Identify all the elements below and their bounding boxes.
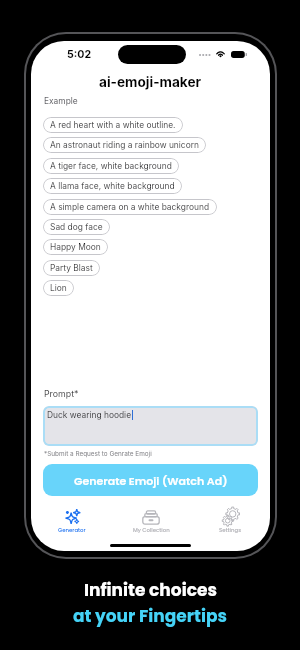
staticText: Sad dog face (50, 222, 103, 232)
staticText: Duck wearing hoodie (47, 410, 132, 420)
button[interactable]: My Collection (115, 505, 187, 532)
staticText: 5:02 (67, 48, 92, 61)
staticText: Settings (219, 526, 242, 534)
button[interactable]: Sad dog face (43, 219, 110, 235)
staticText: A llama face, white background (50, 181, 175, 191)
staticText: Infinite choices (84, 578, 217, 602)
button[interactable]: Generate Emoji (Watch Ad) (43, 464, 258, 496)
staticText: Prompt* (44, 388, 79, 399)
button[interactable]: An astronaut riding a rainbow unicorn (43, 137, 206, 153)
staticText: Happy Moon (50, 242, 101, 252)
button[interactable]: Party Blast (43, 260, 100, 276)
button[interactable]: A tiger face, white background (43, 158, 179, 174)
staticText: A tiger face, white background (50, 161, 172, 171)
staticText: An astronaut riding a rainbow unicorn (50, 140, 199, 150)
staticText: Party Blast (50, 263, 93, 273)
button[interactable]: Lion (43, 280, 74, 296)
staticText: Generator (58, 526, 86, 534)
button[interactable]: Duck wearing hoodie (43, 406, 258, 446)
button[interactable]: Generator (36, 505, 108, 532)
button[interactable]: A llama face, white background (43, 178, 182, 194)
staticText: ai-emoji-maker (99, 74, 202, 90)
staticText: *Submit a Request to Genrate Emoji (44, 450, 152, 458)
staticText: at your Fingertips (73, 604, 227, 628)
staticText: My Collection (133, 526, 170, 534)
staticText: A simple camera on a white background (50, 202, 210, 212)
button[interactable]: A red heart with a white outline. (43, 117, 183, 133)
button[interactable]: A simple camera on a white background (43, 199, 217, 215)
button[interactable]: Settings (194, 505, 266, 532)
staticText: Generate Emoji (Watch Ad) (74, 473, 228, 488)
staticText: Lion (50, 283, 67, 293)
staticText: Example (44, 96, 78, 106)
button[interactable]: Happy Moon (43, 239, 108, 255)
staticText: A red heart with a white outline. (50, 120, 176, 130)
